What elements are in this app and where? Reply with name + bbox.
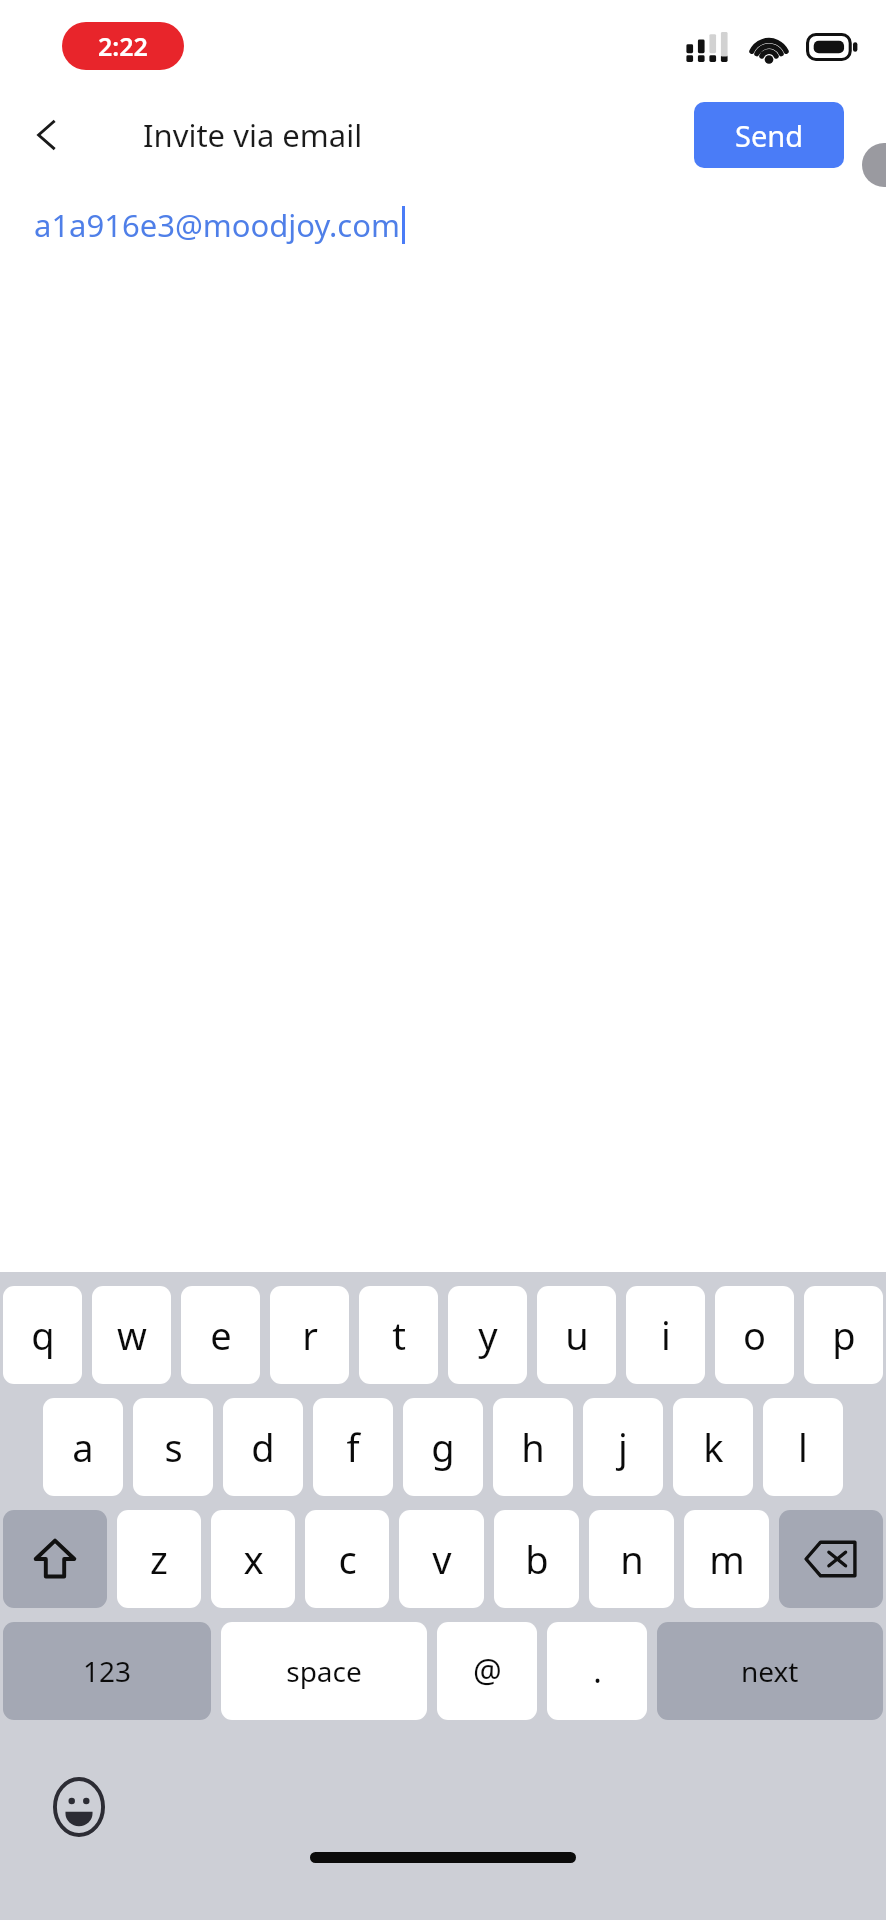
staticText: c: [338, 1533, 357, 1585]
staticText: .: [593, 1649, 602, 1693]
staticText: p: [832, 1309, 856, 1361]
button[interactable]: r: [270, 1286, 349, 1384]
staticText: e: [210, 1309, 232, 1361]
staticText: w: [117, 1309, 147, 1361]
staticText: f: [346, 1421, 360, 1473]
button[interactable]: z: [117, 1510, 201, 1608]
staticText: y: [478, 1309, 498, 1361]
button[interactable]: l: [763, 1398, 843, 1496]
staticText: x: [243, 1533, 264, 1585]
button[interactable]: c: [305, 1510, 389, 1608]
button[interactable]: Emoji: [48, 1776, 110, 1838]
button[interactable]: y: [448, 1286, 527, 1384]
button[interactable]: u: [537, 1286, 616, 1384]
button[interactable]: e: [181, 1286, 260, 1384]
staticText: Send: [735, 116, 804, 155]
button[interactable]: n: [589, 1510, 674, 1608]
staticText: s: [164, 1421, 183, 1473]
button[interactable]: Back: [16, 104, 78, 166]
staticText: m: [709, 1533, 745, 1585]
staticText: h: [521, 1421, 545, 1473]
button[interactable]: v: [399, 1510, 484, 1608]
staticText: z: [150, 1533, 168, 1585]
staticText: u: [565, 1309, 589, 1361]
button[interactable]: Send: [694, 102, 844, 168]
button[interactable]: .: [547, 1622, 647, 1720]
staticText: n: [620, 1533, 644, 1585]
staticText: a: [72, 1421, 94, 1473]
staticText: b: [525, 1533, 549, 1585]
staticText: 123: [83, 1652, 132, 1690]
button[interactable]: a1a916e3@moodjoy.com: [0, 180, 886, 270]
button[interactable]: g: [403, 1398, 483, 1496]
staticText: j: [618, 1421, 628, 1473]
button[interactable]: m: [684, 1510, 769, 1608]
button[interactable]: next: [657, 1622, 883, 1720]
staticText: 2:22: [98, 29, 148, 63]
button[interactable]: f: [313, 1398, 393, 1496]
staticText: space: [286, 1652, 362, 1690]
staticText: o: [743, 1309, 766, 1361]
button[interactable]: h: [493, 1398, 573, 1496]
staticText: @: [473, 1649, 502, 1693]
button[interactable]: b: [494, 1510, 579, 1608]
button[interactable]: d: [223, 1398, 303, 1496]
staticText: Invite via email: [143, 114, 363, 156]
staticText: r: [302, 1309, 318, 1361]
button[interactable]: x: [211, 1510, 295, 1608]
button[interactable]: @: [437, 1622, 537, 1720]
staticText: l: [798, 1421, 808, 1473]
button[interactable]: q: [3, 1286, 82, 1384]
staticText: a1a916e3@moodjoy.com: [34, 204, 400, 246]
button[interactable]: t: [359, 1286, 438, 1384]
button[interactable]: a: [43, 1398, 123, 1496]
staticText: next: [741, 1652, 799, 1690]
button[interactable]: space: [221, 1622, 427, 1720]
staticText: q: [31, 1309, 55, 1361]
staticText: i: [661, 1309, 671, 1361]
button[interactable]: p: [804, 1286, 883, 1384]
staticText: v: [432, 1533, 452, 1585]
button[interactable]: o: [715, 1286, 794, 1384]
button[interactable]: Delete: [779, 1510, 883, 1608]
button[interactable]: i: [626, 1286, 705, 1384]
button[interactable]: k: [673, 1398, 753, 1496]
button[interactable]: s: [133, 1398, 213, 1496]
staticText: t: [392, 1309, 406, 1361]
button[interactable]: Shift: [3, 1510, 107, 1608]
staticText: g: [431, 1421, 455, 1473]
button[interactable]: j: [583, 1398, 663, 1496]
button[interactable]: 123: [3, 1622, 211, 1720]
staticText: k: [703, 1421, 724, 1473]
staticText: d: [251, 1421, 275, 1473]
button[interactable]: w: [92, 1286, 171, 1384]
